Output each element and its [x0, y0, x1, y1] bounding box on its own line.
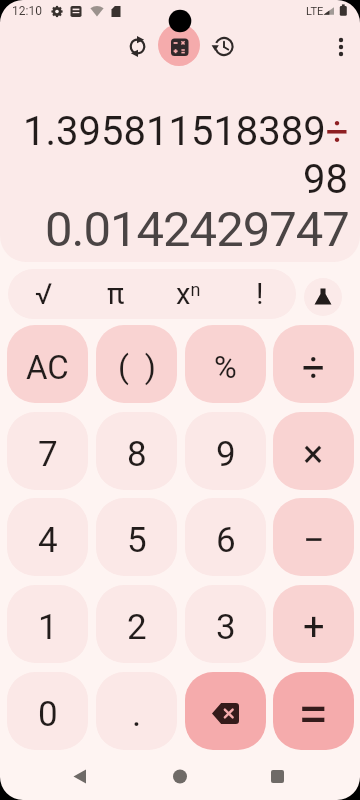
- staticText: %: [214, 349, 237, 385]
- button[interactable]: 3: [185, 585, 266, 663]
- staticText: xn: [176, 277, 201, 311]
- button[interactable]: 0: [7, 672, 88, 750]
- button[interactable]: 2: [96, 585, 177, 663]
- staticText: 1.395811518389÷: [23, 108, 349, 155]
- staticText: 8: [127, 434, 147, 475]
- staticText: 12:10: [12, 4, 42, 18]
- staticText: π: [107, 277, 125, 311]
- button[interactable]: π: [80, 269, 152, 319]
- staticText: !: [256, 277, 264, 311]
- staticText: =: [298, 682, 329, 746]
- button[interactable]: √: [8, 269, 80, 319]
- button[interactable]: [304, 278, 342, 316]
- staticText: 6: [216, 520, 236, 561]
- staticText: 9: [216, 434, 236, 475]
- staticText: 0.0142429747: [45, 201, 349, 258]
- button[interactable]: 4: [7, 498, 88, 576]
- staticText: +: [303, 605, 325, 650]
- staticText: ×: [303, 432, 324, 477]
- button[interactable]: 5: [96, 498, 177, 576]
- button[interactable]: [158, 24, 200, 66]
- staticText: AC: [26, 348, 69, 387]
- staticText: 98: [303, 156, 348, 203]
- button[interactable]: xn: [152, 269, 224, 319]
- button[interactable]: ( ): [96, 325, 177, 403]
- button[interactable]: [165, 762, 195, 792]
- button[interactable]: =: [273, 672, 354, 750]
- button[interactable]: ÷: [273, 325, 354, 403]
- button[interactable]: [185, 672, 266, 750]
- button[interactable]: 6: [185, 498, 266, 576]
- button[interactable]: 9: [185, 412, 266, 490]
- button[interactable]: 7: [7, 412, 88, 490]
- staticText: 4: [38, 520, 58, 561]
- staticText: 3: [216, 607, 236, 648]
- button[interactable]: [328, 34, 354, 60]
- button[interactable]: 8: [96, 412, 177, 490]
- button[interactable]: !: [224, 269, 296, 319]
- button[interactable]: AC: [7, 325, 88, 403]
- button[interactable]: [262, 762, 292, 792]
- staticText: 2: [127, 607, 147, 648]
- button[interactable]: [64, 762, 94, 792]
- staticText: 0: [38, 694, 58, 735]
- staticText: ÷: [302, 344, 325, 391]
- button[interactable]: 1: [7, 585, 88, 663]
- button[interactable]: [208, 32, 238, 62]
- button[interactable]: .: [96, 672, 177, 750]
- button[interactable]: −: [273, 498, 354, 576]
- staticText: ( ): [118, 348, 156, 386]
- staticText: LTE: [306, 5, 324, 18]
- staticText: √: [35, 277, 53, 311]
- button[interactable]: ×: [273, 412, 354, 490]
- staticText: 1: [38, 607, 58, 648]
- staticText: 7: [38, 434, 58, 475]
- button[interactable]: [122, 32, 152, 62]
- staticText: 5: [127, 520, 147, 561]
- button[interactable]: +: [273, 585, 354, 663]
- staticText: −: [303, 518, 325, 563]
- staticText: .: [132, 694, 142, 735]
- button[interactable]: %: [185, 325, 266, 403]
